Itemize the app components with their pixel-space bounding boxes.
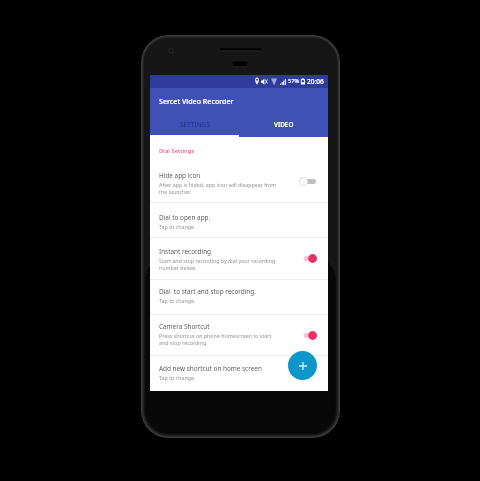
button[interactable]: Instant recording bbox=[150, 238, 328, 279]
button[interactable]: Switch on bbox=[299, 252, 317, 265]
button[interactable]: Add new shortcut on home screen bbox=[150, 356, 328, 391]
staticText: 20:06 bbox=[307, 77, 324, 86]
staticText: 57% bbox=[288, 77, 300, 85]
staticText: Hide app icon bbox=[159, 171, 201, 180]
staticText: Instant recording bbox=[159, 247, 212, 256]
button[interactable]: Dial to open app. bbox=[150, 203, 328, 237]
staticText: Start and stop recording by dial your re… bbox=[159, 257, 276, 264]
staticText: the launcher. bbox=[159, 188, 191, 195]
button[interactable]: Add new shortcut bbox=[288, 351, 317, 380]
button[interactable]: Dial to start and stop recording. bbox=[150, 280, 328, 314]
staticText: Tap to change. bbox=[159, 223, 196, 230]
button[interactable]: SETTINGS bbox=[150, 113, 239, 137]
staticText: Add new shortcut on home screen bbox=[159, 364, 262, 373]
staticText: After app is hided, app icon will disapp… bbox=[159, 181, 277, 188]
button[interactable]: Switch on bbox=[299, 329, 317, 342]
staticText: Sercet Video Recorder bbox=[159, 96, 234, 106]
staticText: number below. bbox=[159, 264, 197, 271]
staticText: Dial to start and stop recording. bbox=[159, 287, 256, 296]
button[interactable]: Switch off bbox=[299, 175, 317, 188]
button[interactable]: Camera Shortcut bbox=[150, 315, 328, 355]
staticText: Press shortcut on phone homescreen to st… bbox=[159, 332, 272, 339]
staticText: Dial Settings bbox=[159, 147, 195, 155]
staticText: SETTINGS bbox=[180, 120, 210, 129]
button[interactable]: VIDEO bbox=[239, 113, 328, 137]
staticText: Camera Shortcut bbox=[159, 322, 210, 331]
staticText: Tap to change. bbox=[159, 374, 196, 381]
staticText: VIDEO bbox=[274, 120, 294, 129]
staticText: Dial to open app. bbox=[159, 213, 211, 222]
staticText: Tap to change. bbox=[159, 297, 196, 304]
staticText: and stop recording. bbox=[159, 339, 208, 346]
button[interactable]: Hide app icon bbox=[150, 160, 328, 202]
